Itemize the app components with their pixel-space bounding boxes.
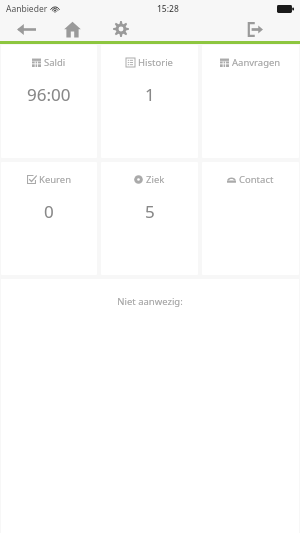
staticText: 1 [145,83,155,106]
button[interactable]: Home [54,17,90,41]
staticText: 5 [145,200,155,223]
staticText: Niet aanwezig: [117,295,183,308]
staticText: Contact [239,173,274,186]
staticText: Ziek [146,173,165,186]
button[interactable]: Historie [101,45,198,158]
staticText: Aanvragen [232,56,281,69]
staticText: 15:28 [157,3,179,15]
staticText: Historie [138,56,173,69]
staticText: 0 [44,200,54,223]
button[interactable]: Back [8,17,44,41]
staticText: Keuren [39,173,72,186]
button[interactable]: Saldi [1,45,97,158]
staticText: Saldi [44,56,66,69]
button[interactable]: Ziek [101,162,198,275]
button[interactable]: Keuren [1,162,97,275]
staticText: Aanbieder [6,3,48,15]
button[interactable]: Contact [202,162,299,275]
staticText: 96:00 [27,83,71,106]
button[interactable]: Aanvragen [202,45,299,158]
button[interactable]: Log out [236,17,272,41]
button[interactable]: Settings [103,17,139,41]
